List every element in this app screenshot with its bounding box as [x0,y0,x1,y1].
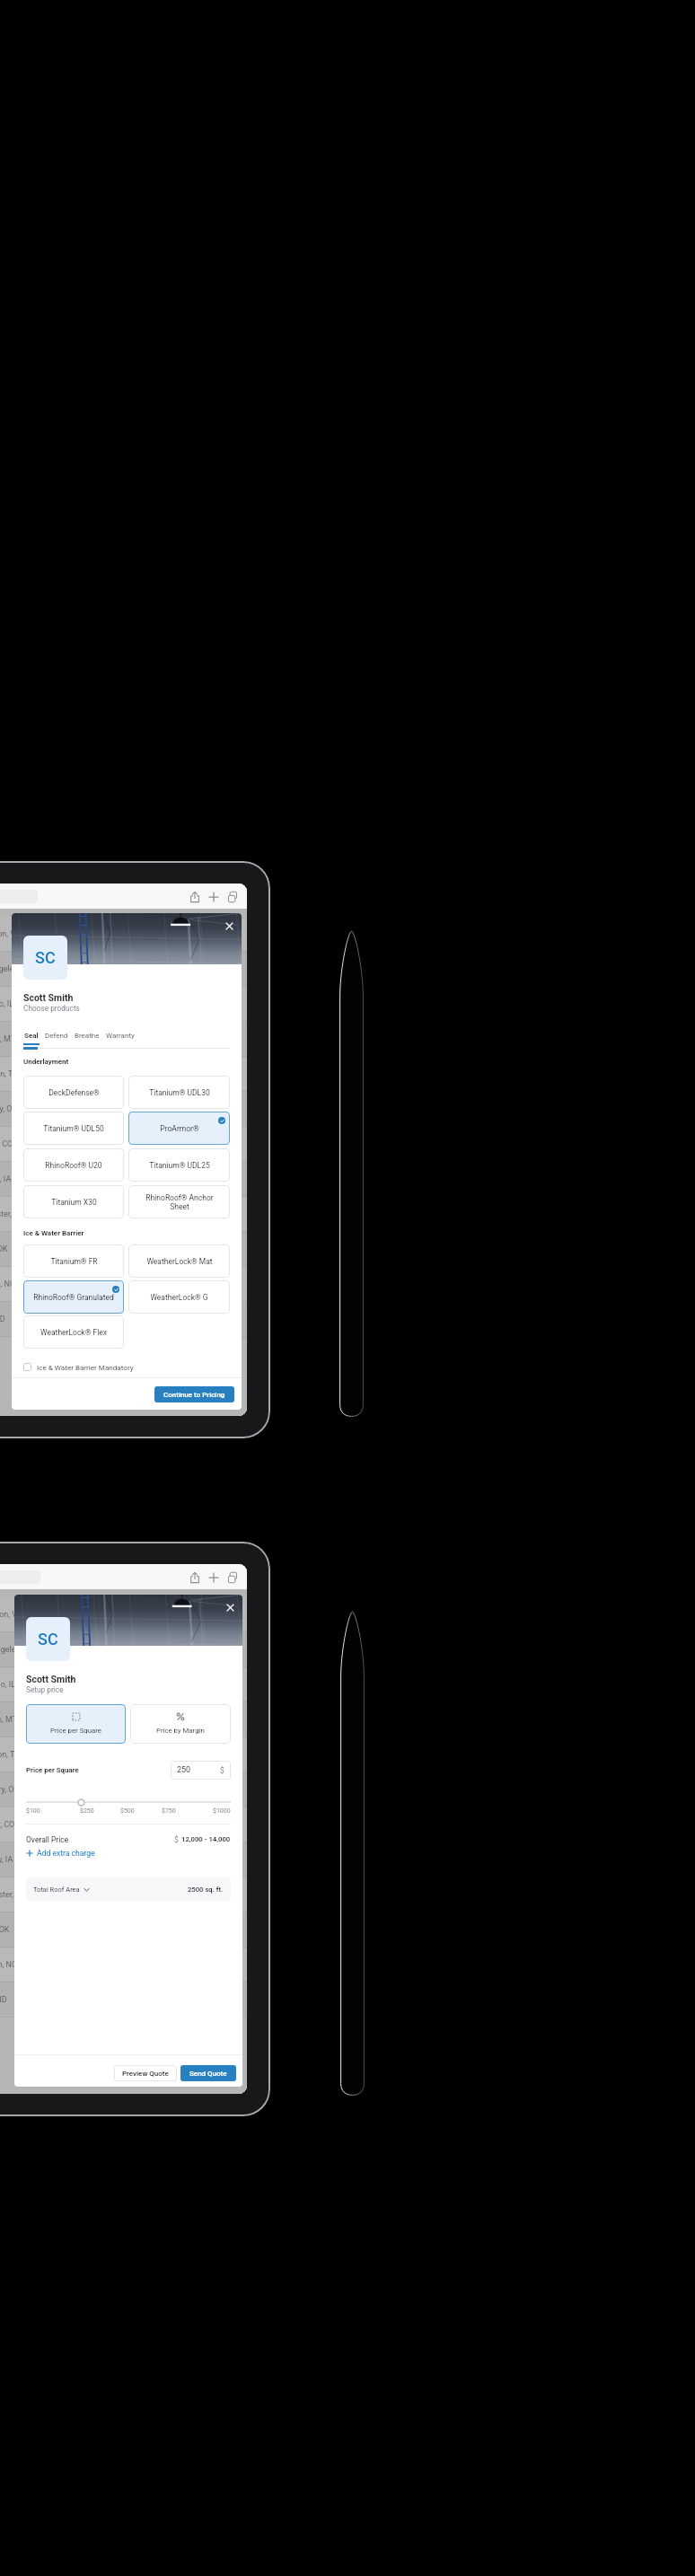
staticText: Arlington, VA [0,1610,22,1620]
staticText: Choose products [23,1004,80,1013]
staticText: Titanium® FR [50,1257,98,1266]
button[interactable]: RhinoRoof® Anchor Sheet [128,1185,230,1218]
staticText: Titanium® UDL30 [149,1088,210,1097]
button[interactable]: Add extra charge [26,1848,95,1859]
button[interactable]: Price per Square [26,1704,126,1744]
staticText: Ankeny, IA [0,1174,12,1184]
staticText: RhinoRoof® Anchor Sheet [145,1193,214,1211]
staticText: Billings, MT [0,1715,18,1725]
staticText: Titanium X30 [51,1198,97,1207]
staticText: $ [220,1766,224,1775]
staticText: Billings, MT [0,1034,16,1044]
button[interactable]: Tabs [223,1568,242,1587]
staticText: WeatherLock® Mat [146,1257,213,1266]
staticText: Arlington, VA [0,929,21,939]
staticText: Chicago, IL [0,1680,16,1690]
button[interactable]: Seal [23,1032,40,1045]
button[interactable]: Warranty [106,1032,135,1045]
staticText: Titanium® UDL25 [149,1161,210,1170]
staticText: Overall Price [26,1835,69,1844]
button[interactable]: New tab [204,887,223,906]
staticText: Boise, ID [0,1314,5,1324]
staticText: Price per Square [50,1727,101,1735]
staticText: 250 [177,1765,191,1775]
button[interactable]: Send Quote [180,2065,236,2081]
staticText: SC [35,948,56,967]
button[interactable]: Close [224,1602,236,1613]
staticText: $750 [162,1807,176,1815]
staticText: Breathe [75,1032,100,1040]
staticText: Worcester, MA [0,1209,27,1219]
button[interactable]: WeatherLock® Mat [128,1244,230,1278]
button[interactable]: Titanium® UDL30 [128,1076,230,1109]
staticText: Los Angeles, CA [0,964,32,974]
staticText: Ice & Water Barrier [23,1229,84,1237]
staticText: Price per Square [26,1766,79,1774]
staticText: $ [174,1835,179,1844]
staticText: Add extra charge [37,1849,95,1858]
staticText: WeatherLock® Flex [40,1328,107,1337]
button[interactable]: WeatherLock® G [128,1280,230,1314]
staticText: Denver, CO [0,1139,13,1149]
staticText: 12,000 - 14,000 [181,1835,231,1843]
button[interactable]: DeckDefense® [23,1076,124,1109]
button[interactable]: Close [224,920,235,932]
staticText: $500 [120,1807,135,1815]
button[interactable]: Continue to Pricing [154,1386,234,1402]
staticText: Ice & Water Barrier Mandatory [37,1363,134,1371]
staticText: Scott Smith [23,992,74,1003]
staticText: Underlayment [23,1058,69,1066]
button[interactable]: ProArmor® [128,1112,230,1145]
staticText: Total Roof Area [33,1886,80,1894]
staticText: Ankeny, IA [0,1855,13,1865]
button[interactable]: RhinoRoof® U20 [23,1148,124,1182]
button[interactable]: Titanium® UDL25 [128,1148,230,1182]
staticText: Price by Margin [156,1727,205,1735]
button[interactable]: Share [185,887,204,906]
staticText: Continue to Pricing [163,1391,225,1399]
button[interactable]: Titanium X30 [23,1185,124,1218]
staticText: Los Angeles, CA [0,1645,34,1655]
staticText: Boise, ID [0,1995,7,2005]
staticText: SC [38,1630,58,1648]
staticText: Tulsa, OK [0,1244,8,1254]
button[interactable]: Price by Margin [130,1704,231,1744]
staticText: Raleigh, NC [0,1279,15,1289]
button[interactable]: Total Roof Area [26,1877,231,1901]
staticText: Titanium® UDL50 [43,1124,104,1133]
staticText: Scott Smith [26,1674,76,1684]
button[interactable]: Defend [45,1032,68,1045]
staticText: 2500 sq. ft. [188,1886,224,1894]
staticText: Seal [24,1032,39,1040]
staticText: Defend [45,1032,68,1040]
button[interactable]: Share [185,1568,204,1587]
button[interactable]: Ice & Water Barrier Mandatory [23,1361,134,1373]
button[interactable]: Breathe [75,1032,100,1045]
staticText: Tulsa, OK [0,1925,10,1935]
staticText: Setup price [26,1685,64,1694]
button[interactable]: RhinoRoof® Granulated [23,1280,124,1314]
button[interactable]: Price slider [77,1798,85,1807]
staticText: Houston, TX [0,1069,18,1079]
staticText: Chicago, IL [0,999,14,1009]
staticText: RhinoRoof® U20 [45,1161,102,1170]
button[interactable]: Preview Quote [114,2065,177,2081]
button[interactable]: WeatherLock® Flex [23,1315,124,1349]
button[interactable]: Titanium® FR [23,1244,124,1278]
staticText: $250 [80,1807,94,1815]
staticText: $1000 [213,1807,231,1815]
staticText: DeckDefense® [48,1088,100,1097]
staticText: Preview Quote [122,2070,169,2078]
staticText: Warranty [106,1032,135,1040]
staticText: Raleigh, NC [0,1960,17,1970]
staticText: Sudbury, ON [0,1785,20,1795]
button[interactable]: New tab [204,1568,223,1587]
staticText: RhinoRoof® Granulated [33,1293,114,1302]
staticText: Denver, CO [0,1820,15,1830]
staticText: WeatherLock® G [150,1293,208,1302]
staticText: Worcester, MA [0,1890,29,1900]
button[interactable]: Tabs [223,887,242,906]
button[interactable]: Titanium® UDL50 [23,1112,124,1145]
staticText: Sudbury, ON [0,1104,18,1114]
button[interactable]: 250 [171,1761,231,1780]
